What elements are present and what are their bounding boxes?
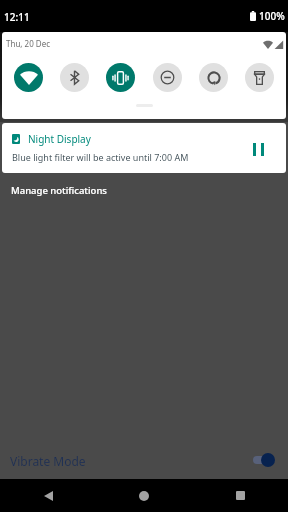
button[interactable]: Wi-Fi — [14, 63, 43, 92]
button[interactable]: Auto rotate — [199, 63, 228, 92]
button[interactable]: Vibrate Mode — [0, 440, 288, 479]
button[interactable]: Vibrate — [106, 63, 135, 92]
button[interactable]: Home — [96, 479, 192, 512]
button[interactable]: Do not disturb — [153, 63, 182, 92]
button[interactable]: Night Display — [2, 123, 286, 173]
button[interactable]: Pause — [240, 129, 276, 169]
staticText: 12:11 — [4, 10, 30, 24]
button[interactable]: Bluetooth — [60, 63, 89, 92]
staticText: Night Display — [28, 132, 91, 146]
button[interactable]: Recent apps — [192, 479, 288, 512]
button[interactable]: Manage notifications — [0, 182, 288, 200]
staticText: Manage notifications — [11, 184, 107, 197]
staticText: 100% — [259, 9, 285, 23]
staticText: Vibrate Mode — [10, 453, 86, 469]
button[interactable]: Flashlight — [245, 63, 274, 92]
staticText: Thu, 20 Dec — [6, 38, 50, 49]
button[interactable]: Back — [0, 479, 96, 512]
staticText: Blue light filter will be active until 7… — [12, 151, 189, 163]
